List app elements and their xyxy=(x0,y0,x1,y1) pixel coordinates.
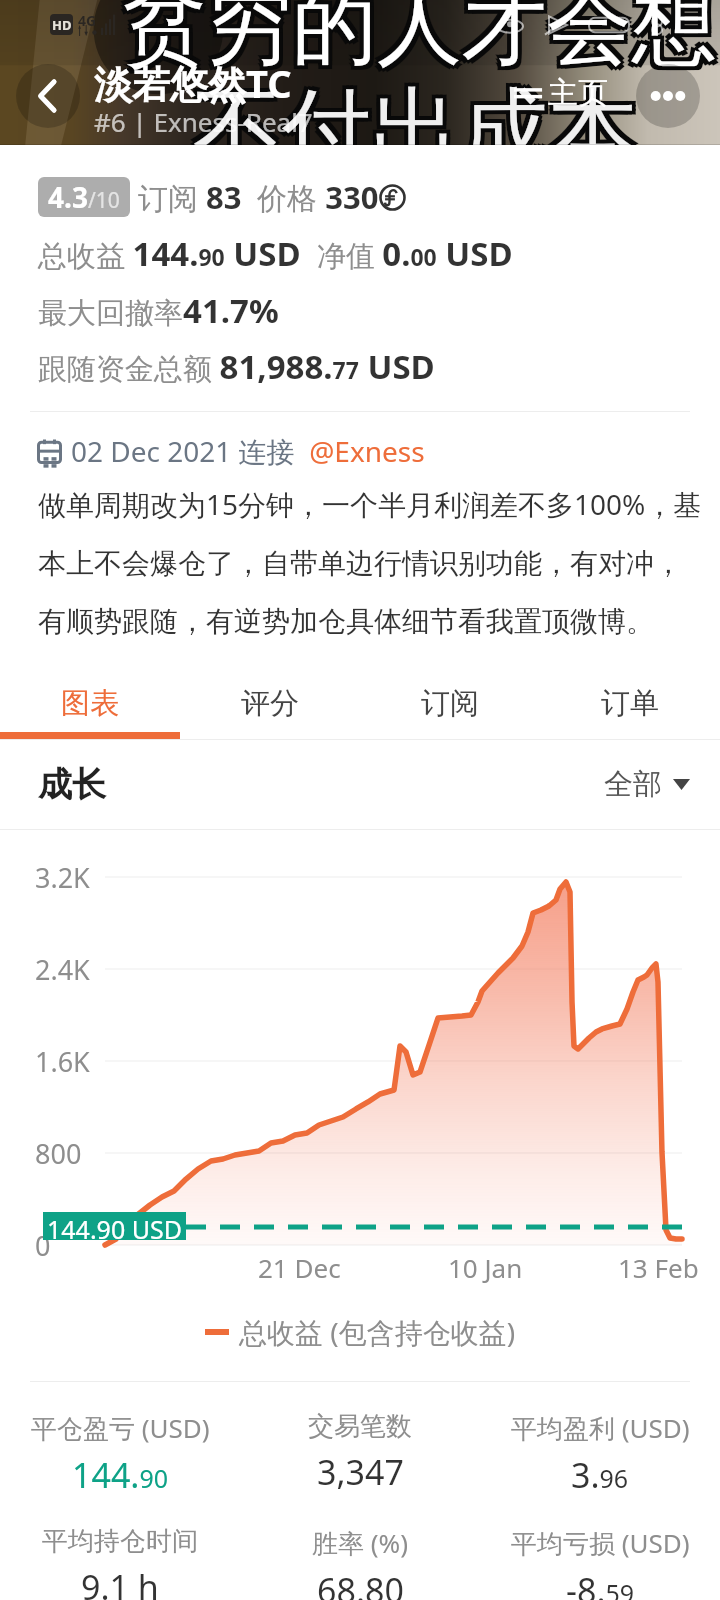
staticText: 贫穷的人才会想 xyxy=(122,0,717,76)
staticText: 3.2K xyxy=(35,859,90,896)
staticText: 贫穷的人才会想 xyxy=(126,0,720,80)
staticText: 不付出成本 xyxy=(197,78,642,145)
staticText: 总收益 144.90 USD 净值 0.00 USD xyxy=(38,231,513,276)
button[interactable]: 订单 xyxy=(540,667,720,739)
staticText: 贫穷的人才会想 xyxy=(122,0,717,80)
staticText: HD xyxy=(52,16,72,34)
staticText: 总收益 (包含持仓收益) xyxy=(239,1313,516,1351)
staticText: 1.6K xyxy=(35,1043,90,1080)
staticText: 跟随资金总额 81,988.77 USD xyxy=(38,344,435,389)
staticText: 0 xyxy=(35,1227,51,1264)
staticText: 2.4K xyxy=(35,951,90,988)
staticText: 4G xyxy=(78,11,97,30)
staticText: 144.90 xyxy=(72,1452,169,1498)
button[interactable]: 全部 xyxy=(604,766,690,803)
staticText: 144.90 USD xyxy=(47,1212,182,1240)
staticText: -8.59 xyxy=(566,1567,635,1600)
button[interactable]: 图表 xyxy=(0,667,180,739)
staticText: 不付出成本 xyxy=(193,78,638,145)
staticText: 不付出成本 xyxy=(197,70,642,145)
staticText: 不付出成本 xyxy=(193,70,638,145)
staticText: 评分 xyxy=(241,685,299,722)
staticText: 贫穷的人才会想 xyxy=(118,0,713,80)
staticText: #6 | Exness-Real7 xyxy=(94,104,313,139)
staticText: 最大回撤率41.7% xyxy=(38,288,279,333)
button[interactable]: Back xyxy=(16,64,80,128)
button[interactable]: 主页 xyxy=(508,70,612,116)
staticText: 10 Jan xyxy=(448,1250,523,1285)
staticText: 平均亏损 (USD) xyxy=(511,1525,690,1561)
staticText: 图表 xyxy=(61,685,119,722)
staticText: 成长 xyxy=(38,763,106,806)
staticText: 4.3/10 xyxy=(48,178,120,216)
staticText: 主页 xyxy=(548,74,608,112)
staticText: 订单 xyxy=(601,685,659,722)
staticText: 贫穷的人才会想 xyxy=(122,0,717,84)
staticText: 贫穷的人才会想 xyxy=(118,0,713,76)
staticText: 胜率 (%) xyxy=(312,1525,408,1561)
staticText: 3,347 xyxy=(317,1449,404,1495)
staticText: 不付出成本 xyxy=(189,78,634,145)
staticText: 做单周期改为15分钟，一个半月利润差不多100%，基本上不会爆仓了，自带单边行情… xyxy=(38,485,702,640)
staticText: 68.80 xyxy=(317,1567,404,1600)
staticText: 不付出成本 xyxy=(193,74,638,145)
staticText: 平仓盈亏 (USD) xyxy=(31,1410,210,1446)
staticText: 订阅 xyxy=(421,685,479,722)
staticText: 3.96 xyxy=(571,1452,629,1498)
staticText: 交易笔数 xyxy=(308,1410,412,1443)
staticText: 13 Feb xyxy=(618,1250,699,1285)
staticText: 不付出成本 xyxy=(189,74,634,145)
staticText: 不付出成本 xyxy=(189,70,634,145)
staticText: 800 xyxy=(35,1135,82,1172)
button[interactable]: More options xyxy=(636,64,700,128)
staticText: 全部 xyxy=(604,766,662,803)
staticText: 21 Dec xyxy=(258,1250,341,1285)
staticText: 贫穷的人才会想 xyxy=(126,0,720,76)
staticText: 贫穷的人才会想 xyxy=(126,0,720,84)
staticText: 订阅 83 价格 330 xyxy=(138,176,379,218)
button[interactable]: 订阅 xyxy=(360,667,540,739)
button[interactable]: 评分 xyxy=(180,667,360,739)
staticText: 贫穷的人才会想 xyxy=(118,0,713,84)
staticText: 平均持仓时间 xyxy=(42,1525,198,1558)
staticText: 淡若悠然TC xyxy=(94,57,292,109)
staticText: 9.1 h xyxy=(81,1564,159,1600)
staticText: 02 Dec 2021 连接 @Exness xyxy=(71,432,425,470)
staticText: 平均盈利 (USD) xyxy=(511,1410,690,1446)
staticText: 不付出成本 xyxy=(197,74,642,145)
